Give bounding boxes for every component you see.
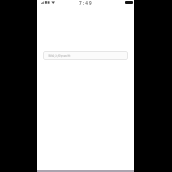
other: Mobile signal and Wi-Fi status [41, 1, 55, 4]
other: Battery full [125, 1, 133, 4]
staticText: 请输入您的昵称 [48, 54, 71, 58]
staticText: 7:49 [79, 0, 93, 6]
button[interactable]: 请输入您的昵称 [43, 51, 128, 60]
